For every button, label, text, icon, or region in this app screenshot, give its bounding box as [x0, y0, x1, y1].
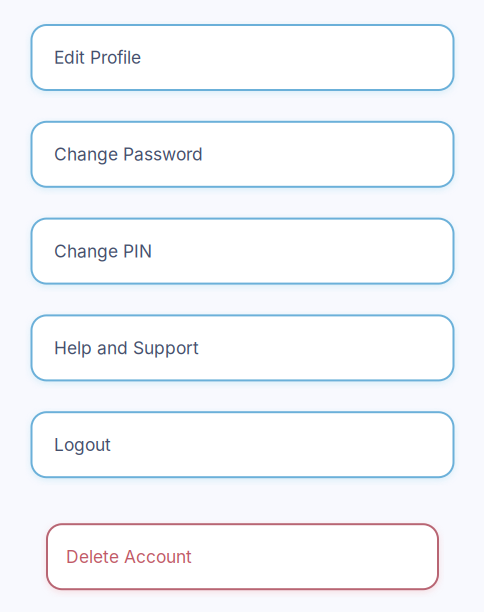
staticText: Delete Account — [66, 546, 192, 567]
button[interactable]: Change PIN — [31, 219, 453, 284]
button[interactable]: Edit Profile — [31, 25, 453, 90]
button[interactable]: Help and Support — [31, 315, 453, 380]
button[interactable]: Logout — [31, 412, 453, 477]
staticText: Help and Support — [54, 337, 199, 358]
staticText: Change Password — [54, 144, 203, 165]
button[interactable]: Delete Account — [47, 524, 438, 589]
staticText: Edit Profile — [54, 47, 141, 68]
button[interactable]: Change Password — [31, 122, 453, 187]
staticText: Logout — [54, 434, 111, 455]
staticText: Change PIN — [54, 241, 152, 262]
